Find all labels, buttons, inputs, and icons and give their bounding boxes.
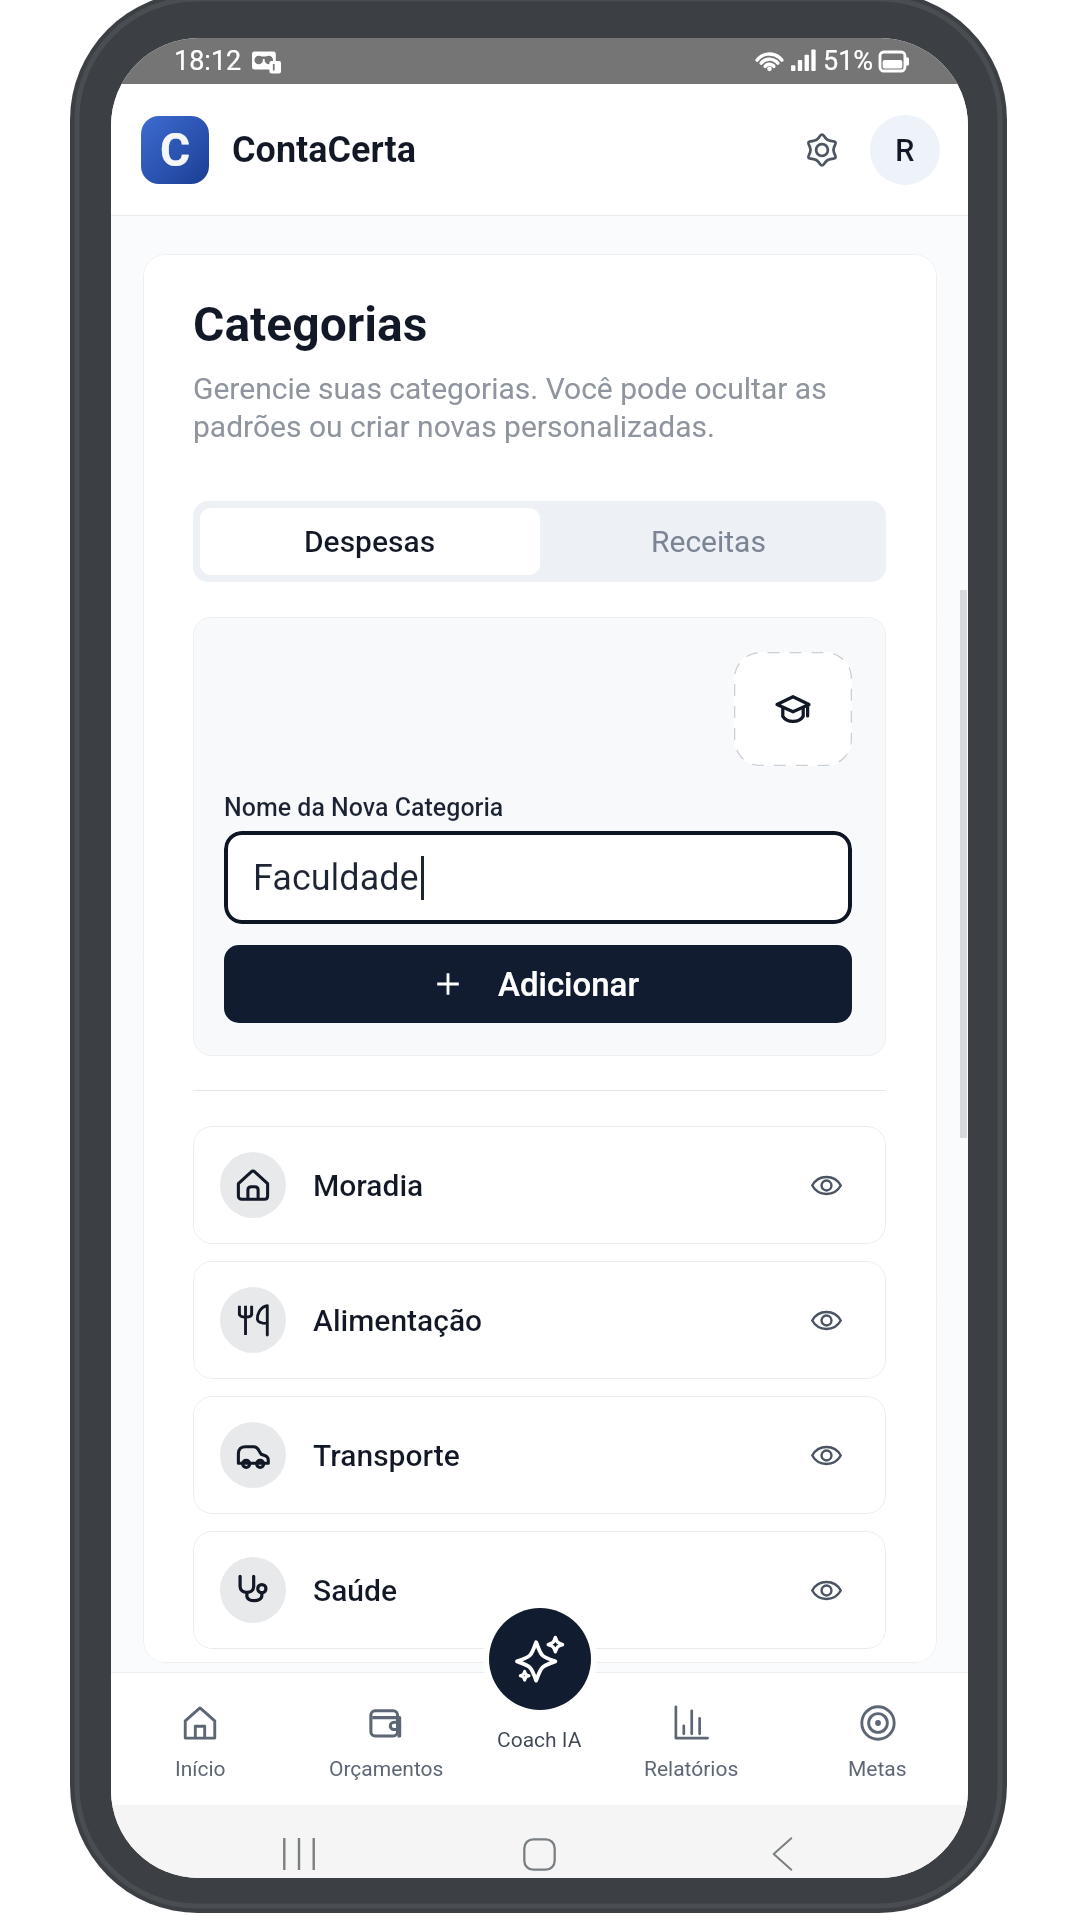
staticText: ContaCerta — [232, 129, 417, 171]
staticText: R — [895, 132, 915, 168]
button[interactable]: Ocultar Alimentação — [800, 1294, 852, 1346]
staticText: C — [160, 123, 191, 177]
button[interactable]: Ocultar Saúde — [800, 1564, 852, 1616]
staticText: Coach IA — [497, 1728, 582, 1753]
button[interactable]: Coach IA — [483, 1672, 595, 1805]
staticText: Receitas — [651, 524, 766, 559]
staticText: Alimentação — [313, 1303, 483, 1338]
staticText: Orçamentos — [329, 1757, 444, 1782]
button[interactable]: R — [870, 115, 940, 185]
staticText: Saúde — [313, 1573, 397, 1608]
button[interactable]: ContaCerta — [141, 116, 209, 184]
button[interactable]: Alimentação — [193, 1261, 886, 1379]
staticText: Transporte — [313, 1438, 460, 1473]
staticText: Categorias — [193, 296, 428, 352]
staticText: Início — [175, 1757, 226, 1782]
staticText: 18:12 — [174, 45, 242, 77]
staticText: 51% — [823, 45, 874, 77]
button[interactable]: Recentes — [283, 1838, 315, 1870]
button[interactable]: Voltar — [772, 1837, 793, 1871]
staticText: Metas — [848, 1757, 907, 1782]
button[interactable]: Configurações — [792, 120, 852, 180]
button[interactable]: Receitas — [547, 501, 886, 582]
button[interactable]: Transporte — [193, 1396, 886, 1514]
staticText: Gerencie suas categorias. Você pode ocul… — [193, 371, 886, 444]
button[interactable]: Ocultar Transporte — [800, 1429, 852, 1481]
staticText: Despesas — [304, 524, 436, 559]
button[interactable]: Saúde — [193, 1531, 886, 1649]
staticText: Moradia — [313, 1168, 424, 1203]
button[interactable]: Orçamentos — [289, 1672, 483, 1805]
button[interactable]: Escolher ícone — [734, 652, 852, 766]
button[interactable]: Início do sistema — [523, 1838, 556, 1871]
button[interactable]: Ocultar Moradia — [800, 1159, 852, 1211]
staticText: Adicionar — [498, 965, 640, 1004]
button[interactable]: Faculdade — [224, 831, 852, 924]
button[interactable]: Adicionar — [224, 945, 852, 1023]
button[interactable]: Metas — [787, 1672, 968, 1805]
staticText: Nome da Nova Categoria — [224, 793, 504, 822]
button[interactable]: Abrir Coach IA — [489, 1608, 591, 1710]
button[interactable]: Relatórios — [595, 1672, 787, 1805]
button[interactable]: Início — [111, 1672, 289, 1805]
staticText: Relatórios — [644, 1757, 739, 1782]
button[interactable]: Despesas — [200, 508, 540, 575]
button[interactable]: Moradia — [193, 1126, 886, 1244]
staticText: Faculdade — [253, 857, 419, 899]
